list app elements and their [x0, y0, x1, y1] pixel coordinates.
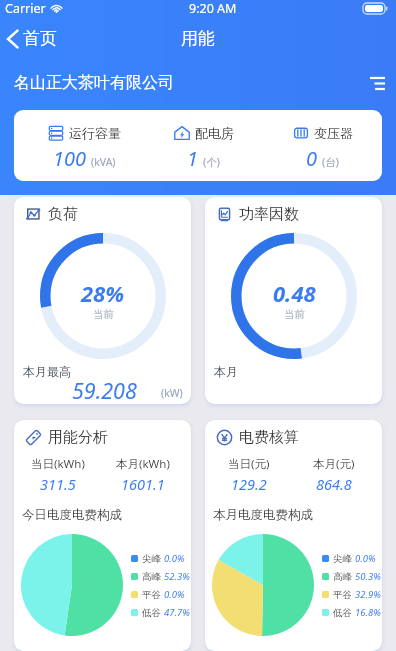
staticText: 首页: [23, 28, 57, 49]
staticText: 16.8%: [355, 606, 381, 619]
staticText: 1: [187, 145, 199, 172]
staticText: 311.5: [40, 474, 76, 494]
staticText: 50.3%: [355, 570, 381, 583]
staticText: 0.0%: [164, 588, 185, 601]
button[interactable]: 配电房: [144, 110, 263, 181]
staticText: 尖峰: [333, 553, 352, 565]
staticText: 高峰: [333, 571, 352, 583]
staticText: 功率因数: [239, 205, 299, 224]
staticText: 变压器: [314, 125, 353, 141]
staticText: Carrier: [5, 0, 46, 16]
staticText: 0.48: [273, 278, 316, 308]
staticText: 28%: [81, 278, 125, 308]
staticText: 低谷: [333, 607, 352, 619]
staticText: 1601.1: [121, 474, 165, 494]
staticText: 电费核算: [239, 428, 299, 447]
staticText: 0: [306, 145, 318, 172]
staticText: 本月电度电费构成: [213, 507, 313, 523]
staticText: 尖峰: [142, 553, 161, 565]
staticText: 用能分析: [48, 428, 108, 447]
staticText: 0.0%: [164, 552, 185, 565]
staticText: 高峰: [142, 571, 161, 583]
staticText: 864.8: [316, 474, 352, 494]
staticText: 59.208: [72, 376, 137, 404]
staticText: 本月最高: [23, 364, 71, 379]
staticText: 32.9%: [355, 588, 381, 601]
button[interactable]: Menu: [367, 73, 388, 93]
button[interactable]: 变压器: [263, 110, 382, 181]
staticText: 本月(kWh): [116, 456, 170, 472]
staticText: 47.7%: [164, 606, 190, 619]
button[interactable]: 功率因数: [205, 197, 382, 404]
staticText: 今日电度电费构成: [22, 507, 122, 523]
staticText: 平谷: [333, 589, 352, 601]
staticText: 当前: [93, 308, 114, 321]
staticText: 9:20 AM: [189, 0, 237, 16]
staticText: 0.0%: [355, 552, 376, 565]
staticText: 当日(元): [228, 456, 270, 472]
staticText: 名山正大茶叶有限公司: [14, 73, 174, 93]
button[interactable]: 首页: [2, 25, 61, 52]
staticText: 平谷: [142, 589, 161, 601]
button[interactable]: 负荷: [14, 197, 191, 404]
staticText: 负荷: [48, 205, 78, 224]
staticText: 配电房: [195, 125, 234, 141]
staticText: 本月(元): [313, 456, 355, 472]
button[interactable]: 用能分析: [14, 420, 191, 651]
button[interactable]: 运行容量: [24, 110, 144, 181]
staticText: 100: [53, 145, 87, 172]
staticText: 用能: [181, 28, 215, 49]
staticText: (kVA): [91, 155, 116, 169]
staticText: 当前: [284, 308, 305, 321]
staticText: 129.2: [231, 474, 267, 494]
staticText: 本月: [214, 364, 238, 379]
staticText: 低谷: [142, 607, 161, 619]
staticText: 运行容量: [69, 125, 121, 141]
button[interactable]: 电费核算: [205, 420, 382, 651]
staticText: (台): [322, 155, 339, 169]
staticText: 52.3%: [164, 570, 190, 583]
staticText: 当日(kWh): [31, 456, 85, 472]
staticText: (kW): [161, 386, 183, 400]
staticText: (个): [203, 155, 220, 169]
